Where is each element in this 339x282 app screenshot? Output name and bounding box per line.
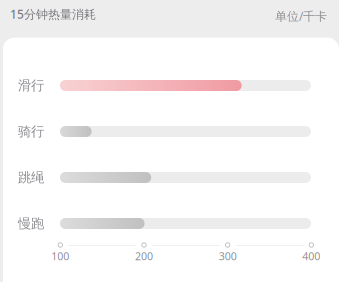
staticText: 300 bbox=[219, 249, 237, 263]
staticText: 400 bbox=[302, 249, 320, 263]
staticText: 200 bbox=[135, 249, 153, 263]
staticText: 单位/千卡 bbox=[275, 8, 327, 24]
staticText: 跳绳 bbox=[18, 169, 44, 186]
staticText: 100 bbox=[51, 249, 69, 263]
staticText: 15分钟热量消耗 bbox=[10, 6, 96, 22]
staticText: 骑行 bbox=[18, 123, 44, 140]
staticText: 滑行 bbox=[18, 77, 44, 94]
staticText: 慢跑 bbox=[18, 215, 44, 232]
